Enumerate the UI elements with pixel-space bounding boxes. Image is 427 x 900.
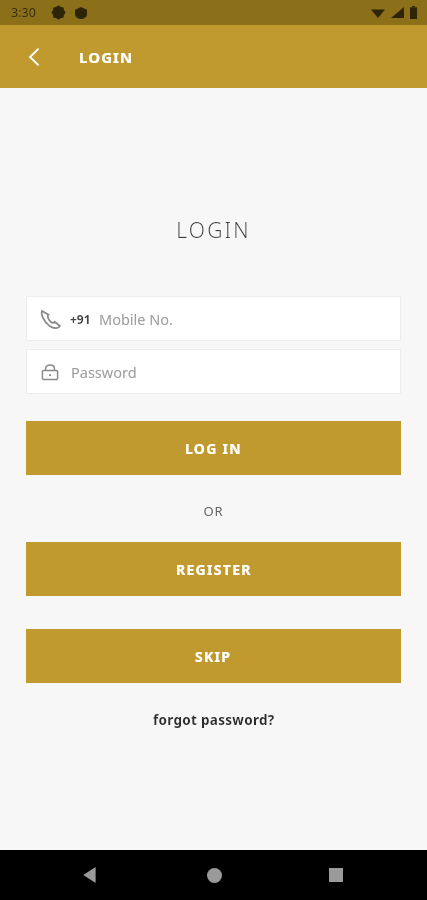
staticText: LOG IN (185, 439, 243, 458)
button[interactable]: Back (68, 853, 112, 897)
staticText: 3:30 (11, 4, 36, 21)
staticText: REGISTER (176, 560, 252, 579)
staticText: LOGIN (0, 216, 427, 245)
button[interactable]: Home (192, 853, 236, 897)
staticText: Password (71, 362, 137, 382)
staticText: SKIP (195, 647, 232, 666)
button[interactable]: Password (26, 349, 401, 394)
button[interactable]: SKIP (26, 629, 401, 683)
button[interactable]: LOG IN (26, 421, 401, 475)
staticText: LOGIN (79, 47, 134, 67)
button[interactable]: Recent apps (314, 853, 358, 897)
staticText: Mobile No. (99, 309, 173, 329)
button[interactable]: Back (14, 36, 56, 78)
staticText: OR (0, 502, 427, 520)
button[interactable]: REGISTER (26, 542, 401, 596)
button[interactable]: +91 (26, 296, 401, 341)
button[interactable]: forgot password? (0, 711, 427, 729)
staticText: forgot password? (153, 711, 275, 729)
staticText: +91 (70, 311, 91, 327)
